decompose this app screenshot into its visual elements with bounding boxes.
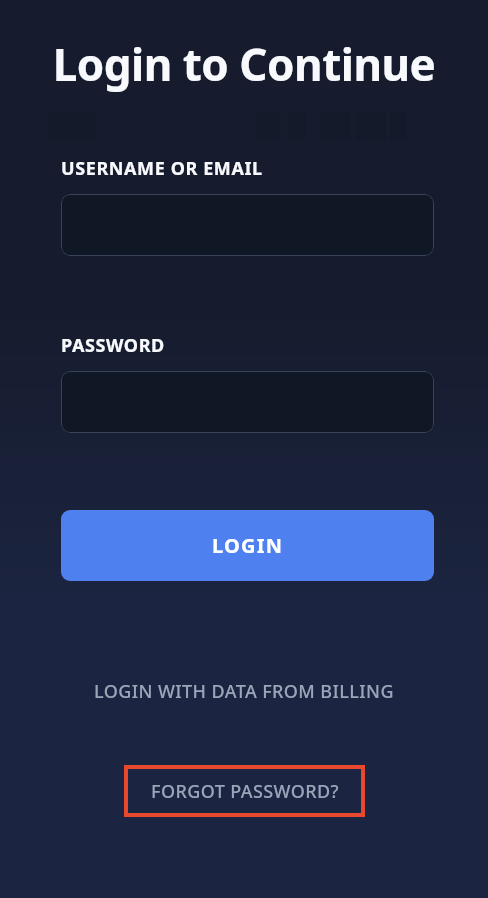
staticText: PASSWORD bbox=[61, 333, 165, 358]
staticText: FORGOT PASSWORD? bbox=[151, 779, 339, 804]
button[interactable]: Password input bbox=[61, 371, 434, 433]
staticText: USERNAME OR EMAIL bbox=[61, 156, 263, 181]
button[interactable]: FORGOT PASSWORD? bbox=[124, 765, 365, 817]
staticText: Login to Continue bbox=[0, 34, 488, 94]
staticText: LOGIN bbox=[212, 532, 284, 559]
button[interactable]: LOGIN WITH DATA FROM BILLING bbox=[0, 679, 488, 704]
staticText: LOGIN WITH DATA FROM BILLING bbox=[94, 679, 394, 704]
button[interactable]: LOGIN bbox=[61, 510, 434, 581]
button[interactable]: Username or email input bbox=[61, 194, 434, 256]
